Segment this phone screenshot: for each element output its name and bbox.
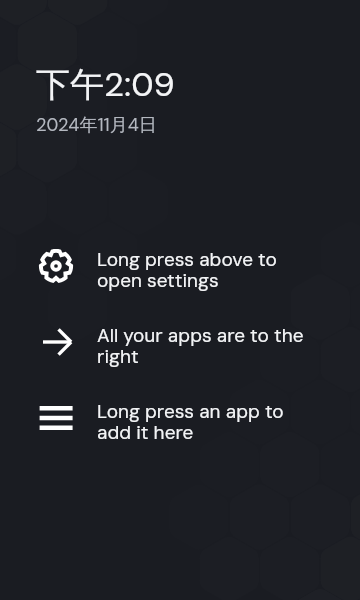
- staticText: 2024年11月4日: [36, 113, 157, 136]
- other: Open settings: [36, 246, 76, 286]
- other: All apps to the right: [36, 322, 76, 362]
- button[interactable]: All apps to the right: [0, 316, 360, 372]
- button[interactable]: Open settings: [0, 240, 360, 296]
- staticText: Long press an app to add it here: [97, 399, 311, 445]
- button[interactable]: 下午2:09: [24, 52, 204, 146]
- staticText: All your apps are to the right: [97, 323, 311, 369]
- staticText: 下午2:09: [36, 62, 175, 106]
- other: Add app here: [36, 398, 76, 438]
- button[interactable]: Add app here: [0, 392, 360, 448]
- staticText: Long press above to open settings: [97, 247, 311, 293]
